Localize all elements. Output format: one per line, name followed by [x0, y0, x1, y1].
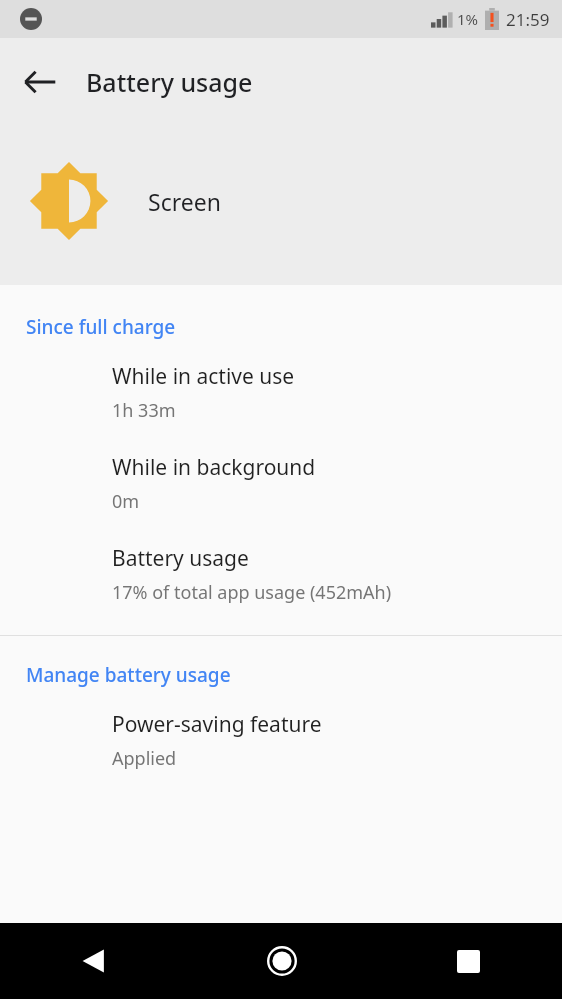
staticText: Screen — [148, 186, 221, 217]
staticText: Since full charge — [26, 314, 176, 340]
staticText: Applied — [112, 746, 177, 771]
staticText: Battery usage — [112, 544, 249, 573]
staticText: 1h 33m — [112, 398, 176, 423]
button[interactable]: Power-saving feature — [0, 708, 562, 773]
staticText: 1% — [457, 9, 479, 29]
staticText: 0m — [112, 489, 140, 514]
button[interactable]: While in background — [0, 451, 562, 516]
button[interactable]: Back — [14, 56, 66, 108]
button[interactable]: Recent apps — [375, 923, 562, 999]
button[interactable]: While in active use — [0, 360, 562, 425]
staticText: While in background — [112, 453, 316, 482]
staticText: Manage battery usage — [26, 662, 231, 688]
button[interactable]: Back — [0, 923, 188, 999]
button[interactable]: Battery usage — [0, 542, 562, 607]
button[interactable]: Home — [188, 923, 375, 999]
staticText: Battery usage — [86, 65, 253, 99]
staticText: Power-saving feature — [112, 710, 322, 739]
staticText: 21:59 — [506, 8, 550, 31]
staticText: While in active use — [112, 362, 295, 391]
staticText: 17% of total app usage (452mAh) — [112, 580, 392, 605]
